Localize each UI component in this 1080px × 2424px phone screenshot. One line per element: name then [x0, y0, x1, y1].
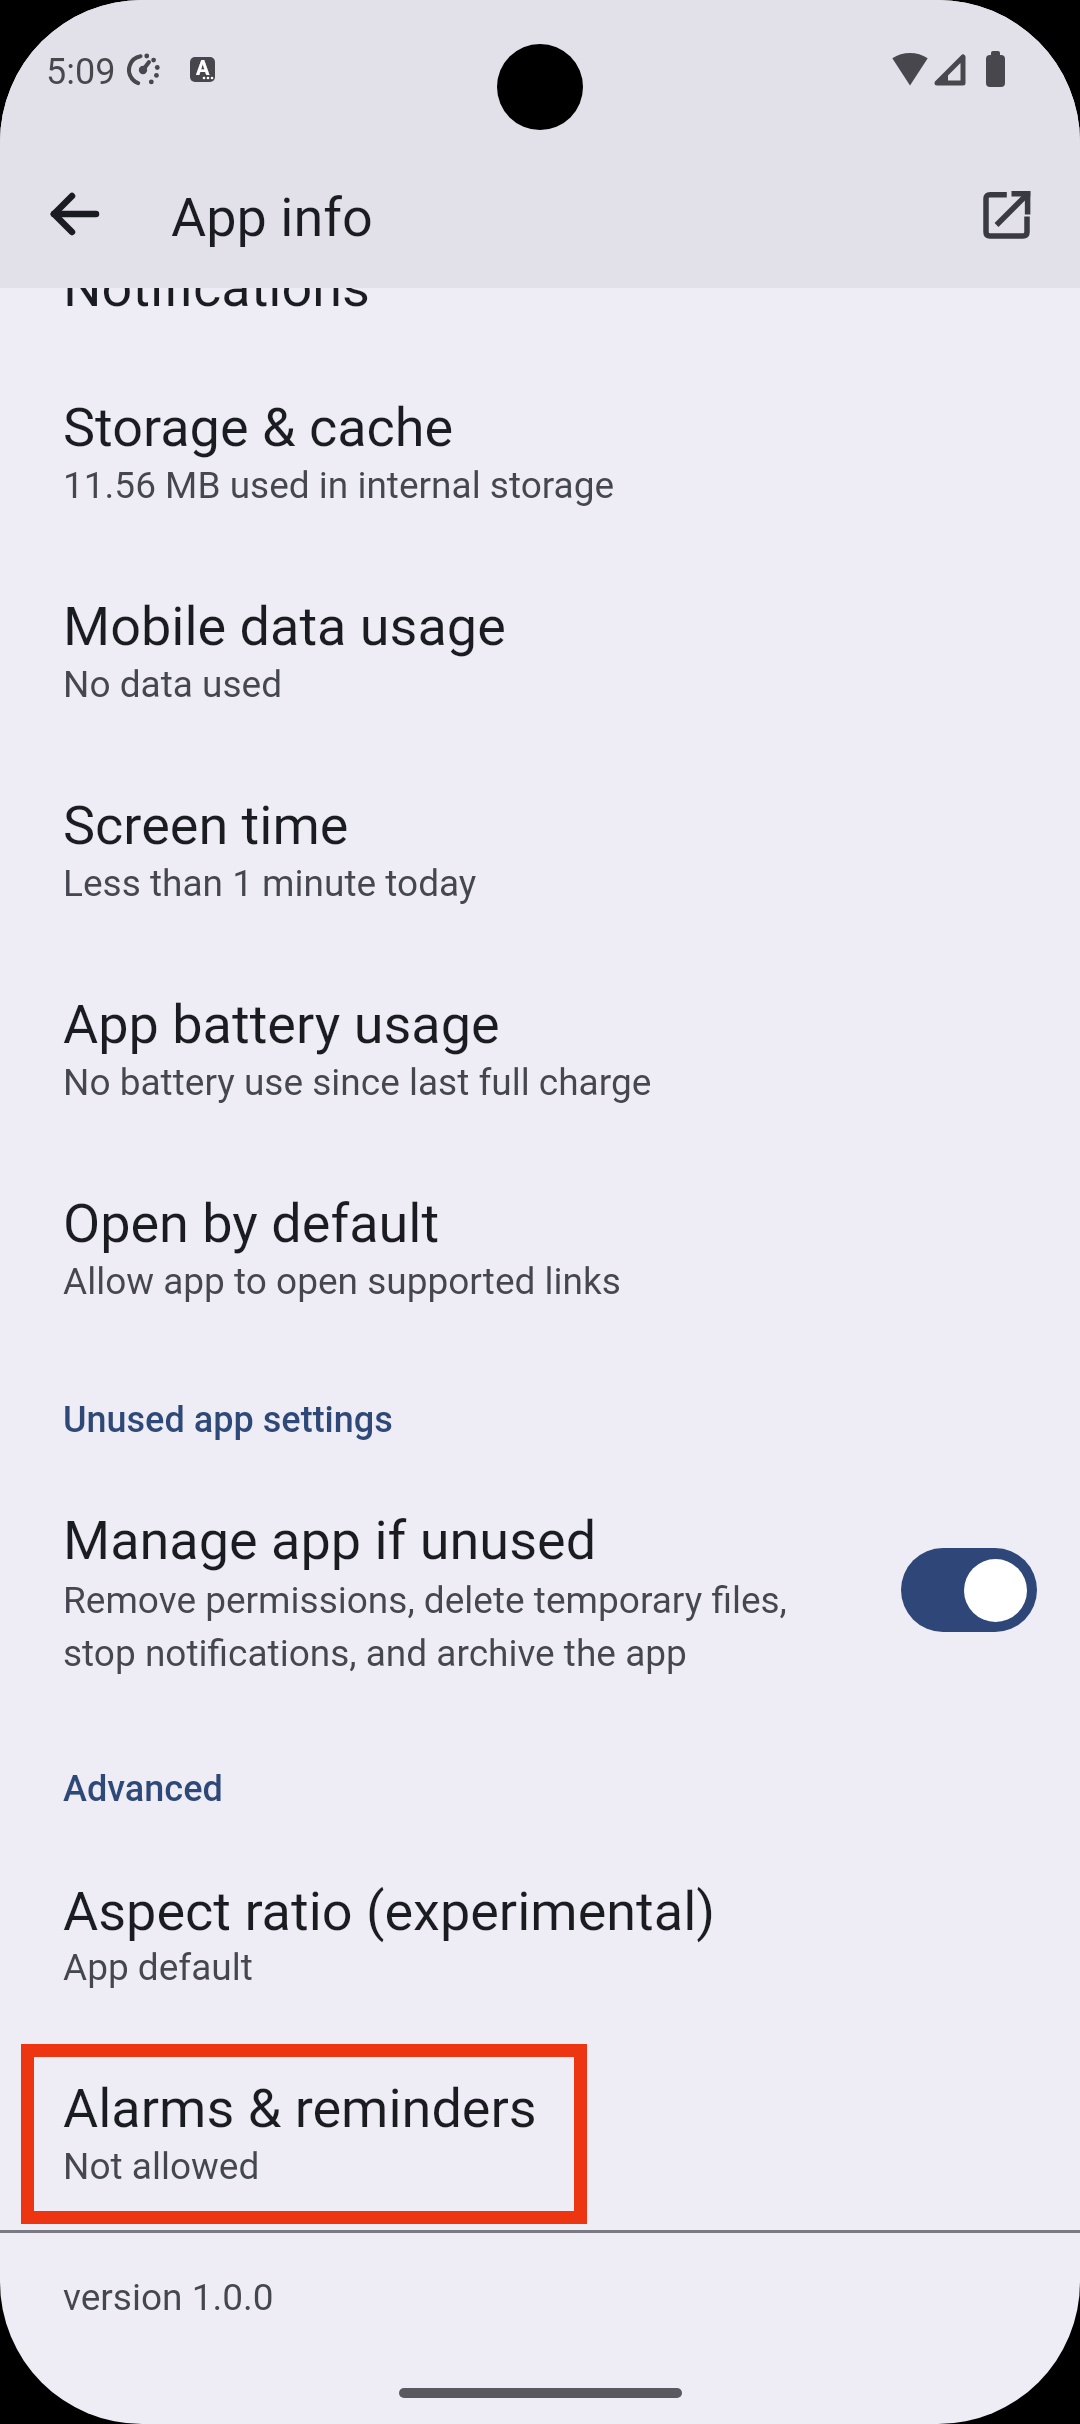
- staticText: stop notifications, and archive the app: [63, 1632, 687, 1675]
- staticText: 11.56 MB used in internal storage: [63, 464, 615, 507]
- staticText: Unused app settings: [63, 1399, 393, 1441]
- staticText: version 1.0.0: [63, 2276, 274, 2319]
- button[interactable]: [0, 1495, 1080, 1685]
- staticText: Not allowed: [63, 2145, 260, 2188]
- button[interactable]: [0, 1870, 1080, 2030]
- staticText: Less than 1 minute today: [63, 862, 477, 905]
- button[interactable]: [959, 167, 1055, 263]
- staticText: App info: [171, 186, 373, 249]
- button[interactable]: [0, 983, 1080, 1143]
- staticText: Mobile data usage: [63, 595, 506, 658]
- button[interactable]: [0, 386, 1080, 546]
- staticText: Advanced: [63, 1768, 223, 1810]
- staticText: A: [196, 57, 210, 79]
- staticText: Screen time: [63, 794, 349, 857]
- button[interactable]: [901, 1548, 1037, 1632]
- button[interactable]: [27, 166, 123, 262]
- button[interactable]: [0, 1182, 1080, 1342]
- button[interactable]: [0, 585, 1080, 745]
- staticText: No data used: [63, 663, 283, 706]
- staticText: Manage app if unused: [63, 1509, 597, 1572]
- button[interactable]: [0, 784, 1080, 944]
- staticText: App battery usage: [63, 993, 500, 1056]
- staticText: Allow app to open supported links: [63, 1260, 621, 1303]
- staticText: No battery use since last full charge: [63, 1061, 652, 1104]
- staticText: App default: [63, 1946, 253, 1989]
- staticText: Open by default: [63, 1192, 440, 1255]
- staticText: Notifications: [63, 256, 370, 319]
- staticText: 5:09: [46, 51, 116, 93]
- staticText: Alarms & reminders: [63, 2077, 537, 2140]
- staticText: Aspect ratio (experimental): [63, 1880, 716, 1943]
- staticText: Remove permissions, delete temporary fil…: [63, 1579, 787, 1622]
- staticText: Storage & cache: [63, 396, 454, 459]
- button[interactable]: [0, 2067, 1080, 2227]
